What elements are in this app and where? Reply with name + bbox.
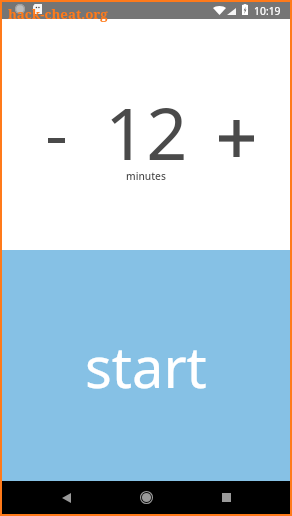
- button[interactable]: Home: [122, 481, 170, 514]
- staticText: minutes: [126, 169, 166, 183]
- staticText: start: [85, 328, 207, 404]
- button[interactable]: Recents: [202, 481, 250, 514]
- button[interactable]: Back: [42, 481, 90, 514]
- staticText: 12: [105, 83, 188, 181]
- staticText: 10:19: [254, 4, 281, 18]
- button[interactable]: Increase minutes: [182, 19, 290, 250]
- staticText: hack-cheat.org: [8, 5, 108, 23]
- button[interactable]: start: [2, 250, 290, 481]
- button[interactable]: Decrease minutes: [2, 19, 110, 250]
